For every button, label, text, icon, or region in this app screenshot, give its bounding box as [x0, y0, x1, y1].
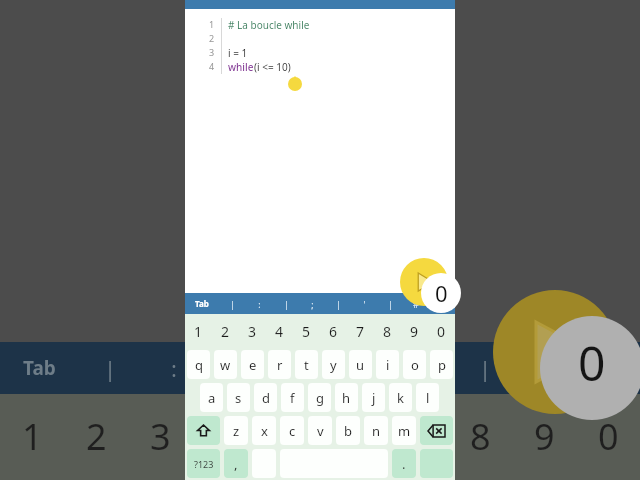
button[interactable]: 0 [421, 273, 461, 313]
staticText: 1 [194, 322, 203, 341]
button[interactable] [420, 449, 453, 478]
button[interactable]: j [362, 383, 385, 412]
button[interactable]: n [364, 416, 388, 445]
staticText: ?123 [194, 458, 214, 470]
button[interactable]: ' [351, 293, 377, 314]
button[interactable]: v [308, 416, 332, 445]
staticText: j [372, 389, 376, 407]
button[interactable]: # [403, 293, 429, 314]
staticText: ; [311, 298, 314, 310]
button[interactable]: | [219, 293, 246, 314]
staticText: d [262, 389, 270, 407]
button[interactable]: 1 [185, 314, 212, 348]
staticText: c [289, 422, 296, 440]
button[interactable]: z [224, 416, 248, 445]
button[interactable]: p [430, 350, 453, 379]
staticText: 0 [435, 278, 448, 308]
button[interactable]: k [389, 383, 412, 412]
button[interactable]: x [252, 416, 276, 445]
button[interactable]: 0 [428, 314, 455, 348]
staticText: s [235, 389, 242, 407]
button[interactable]: q [187, 350, 210, 379]
button[interactable]: 7 [347, 314, 374, 348]
button[interactable]: ?123 [187, 449, 220, 478]
button[interactable]: , [224, 449, 248, 478]
staticText: 6 [342, 412, 363, 461]
staticText: 0 [437, 322, 446, 341]
button[interactable]: h [335, 383, 358, 412]
staticText: 4 [275, 322, 284, 341]
button[interactable]: | [377, 293, 403, 314]
button[interactable]: 2 [212, 314, 239, 348]
staticText: k [397, 389, 404, 407]
button[interactable]: . [392, 449, 416, 478]
staticText: : [258, 298, 261, 310]
staticText: 2 [86, 412, 107, 461]
staticText: | [230, 353, 243, 383]
button[interactable]: Tab [185, 293, 219, 314]
button[interactable]: g [308, 383, 331, 412]
button[interactable]: y [322, 350, 345, 379]
staticText: m [398, 422, 411, 440]
staticText: Tab [195, 298, 209, 309]
button[interactable]: 3 [239, 314, 266, 348]
staticText: 8 [383, 322, 392, 341]
staticText: . [402, 455, 406, 473]
staticText: | [284, 298, 289, 310]
staticText: 3 [209, 46, 215, 58]
button[interactable]: o [403, 350, 426, 379]
staticText: b [344, 422, 352, 440]
staticText: f [290, 389, 295, 407]
button[interactable]: Shift [187, 416, 220, 445]
button[interactable]: t [295, 350, 318, 379]
staticText: | [440, 298, 445, 310]
button[interactable]: Backspace [420, 416, 453, 445]
staticText: y [330, 356, 337, 374]
staticText: g [316, 389, 324, 407]
button[interactable]: a [200, 383, 223, 412]
staticText: 6 [329, 322, 338, 341]
staticText: 2 [221, 322, 230, 341]
staticText: r [277, 356, 283, 374]
button[interactable]: | [273, 293, 299, 314]
staticText: 9 [534, 412, 555, 461]
staticText: 5 [278, 412, 299, 461]
button[interactable]: 8 [374, 314, 401, 348]
button[interactable]: s [227, 383, 250, 412]
button[interactable]: ; [299, 293, 325, 314]
staticText: 3 [150, 412, 171, 461]
button[interactable]: d [254, 383, 277, 412]
staticText: u [356, 356, 365, 374]
staticText: 1 [22, 412, 43, 461]
staticText: i = 1 [228, 46, 248, 60]
staticText: 4 [209, 60, 215, 72]
button[interactable]: | [429, 293, 455, 314]
button[interactable]: m [392, 416, 416, 445]
staticText: 0 [578, 330, 606, 390]
button[interactable]: 5 [293, 314, 320, 348]
button[interactable]: 9 [401, 314, 428, 348]
button[interactable]: u [349, 350, 372, 379]
button[interactable]: e [241, 350, 264, 379]
button[interactable]: Run [400, 258, 448, 306]
staticText: n [372, 422, 381, 440]
staticText: a [208, 389, 216, 407]
button[interactable]: : [246, 293, 273, 314]
button[interactable]: r [268, 350, 291, 379]
button[interactable]: i [376, 350, 399, 379]
button[interactable]: l [416, 383, 439, 412]
staticText: 4 [214, 412, 235, 461]
staticText: l [426, 389, 430, 407]
button[interactable]: 6 [320, 314, 347, 348]
button[interactable]: w [214, 350, 237, 379]
button[interactable]: 4 [266, 314, 293, 348]
button[interactable]: | [325, 293, 351, 314]
staticText: p [438, 356, 446, 374]
button[interactable]: f [281, 383, 304, 412]
button[interactable]: b [336, 416, 360, 445]
button[interactable]: c [280, 416, 304, 445]
staticText: o [411, 356, 419, 374]
